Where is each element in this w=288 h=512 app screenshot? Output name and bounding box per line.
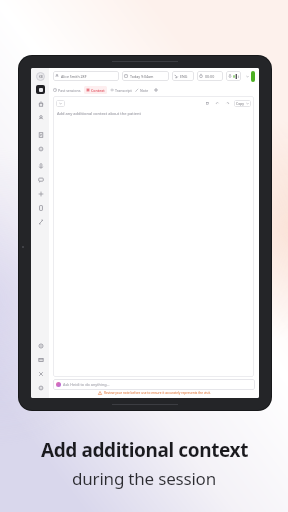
button[interactable]: Microphone level (226, 71, 241, 81)
button[interactable]: Start visit (251, 71, 255, 82)
button[interactable]: Library (36, 355, 45, 364)
button[interactable]: Shortcuts (36, 369, 45, 378)
button[interactable]: Patients (36, 113, 45, 122)
button[interactable]: Transcript (110, 86, 132, 94)
staticText: Today 9:04am (130, 74, 154, 79)
button[interactable]: Home (36, 99, 45, 108)
button[interactable]: Ask Heidi to do anything... (53, 379, 255, 390)
button[interactable]: Copy (234, 100, 251, 107)
button[interactable]: More audio options (243, 71, 251, 81)
button[interactable]: Files (36, 203, 45, 212)
staticText: KB (39, 75, 43, 79)
button[interactable]: Integrations (36, 144, 45, 153)
button[interactable]: Expand (36, 217, 45, 226)
button[interactable]: Past sessions (53, 86, 81, 94)
staticText: during the session (72, 467, 216, 490)
button[interactable]: Sessions (36, 85, 45, 94)
button[interactable]: Alice Smith 28F (53, 71, 119, 81)
staticText: 00:00 (205, 74, 215, 79)
staticText: Context (91, 88, 105, 93)
button[interactable]: Delete (204, 100, 211, 107)
button[interactable]: Text style (56, 100, 65, 107)
button[interactable]: Undo (214, 100, 221, 107)
staticText: Transcript (115, 88, 132, 93)
button[interactable]: History (36, 175, 45, 184)
button[interactable]: 00:00 (197, 71, 223, 81)
staticText: Add additional context (41, 437, 248, 463)
staticText: Add any additional context about the pat… (57, 111, 141, 116)
button[interactable]: Help (36, 341, 45, 350)
button[interactable]: Profile (36, 72, 45, 81)
staticText: Alice Smith 28F (61, 74, 87, 79)
staticText: ENG (180, 74, 188, 79)
staticText: Past sessions (58, 88, 81, 93)
staticText: Copy (236, 101, 244, 106)
button[interactable]: ENG (172, 71, 194, 81)
button[interactable]: Today 9:04am (122, 71, 169, 81)
button[interactable]: Templates (36, 130, 45, 139)
button[interactable]: Redo (224, 100, 231, 107)
staticText: Note (140, 88, 149, 93)
staticText: Review your note before use to ensure it… (104, 391, 211, 395)
staticText: Ask Heidi to do anything... (63, 382, 110, 387)
button[interactable]: Settings (36, 383, 45, 392)
button[interactable]: Context (86, 86, 105, 94)
button[interactable]: Add tab (152, 86, 159, 93)
button[interactable]: Ask (36, 189, 45, 198)
button[interactable]: Dictate (36, 161, 45, 170)
button[interactable]: Note (135, 86, 149, 94)
